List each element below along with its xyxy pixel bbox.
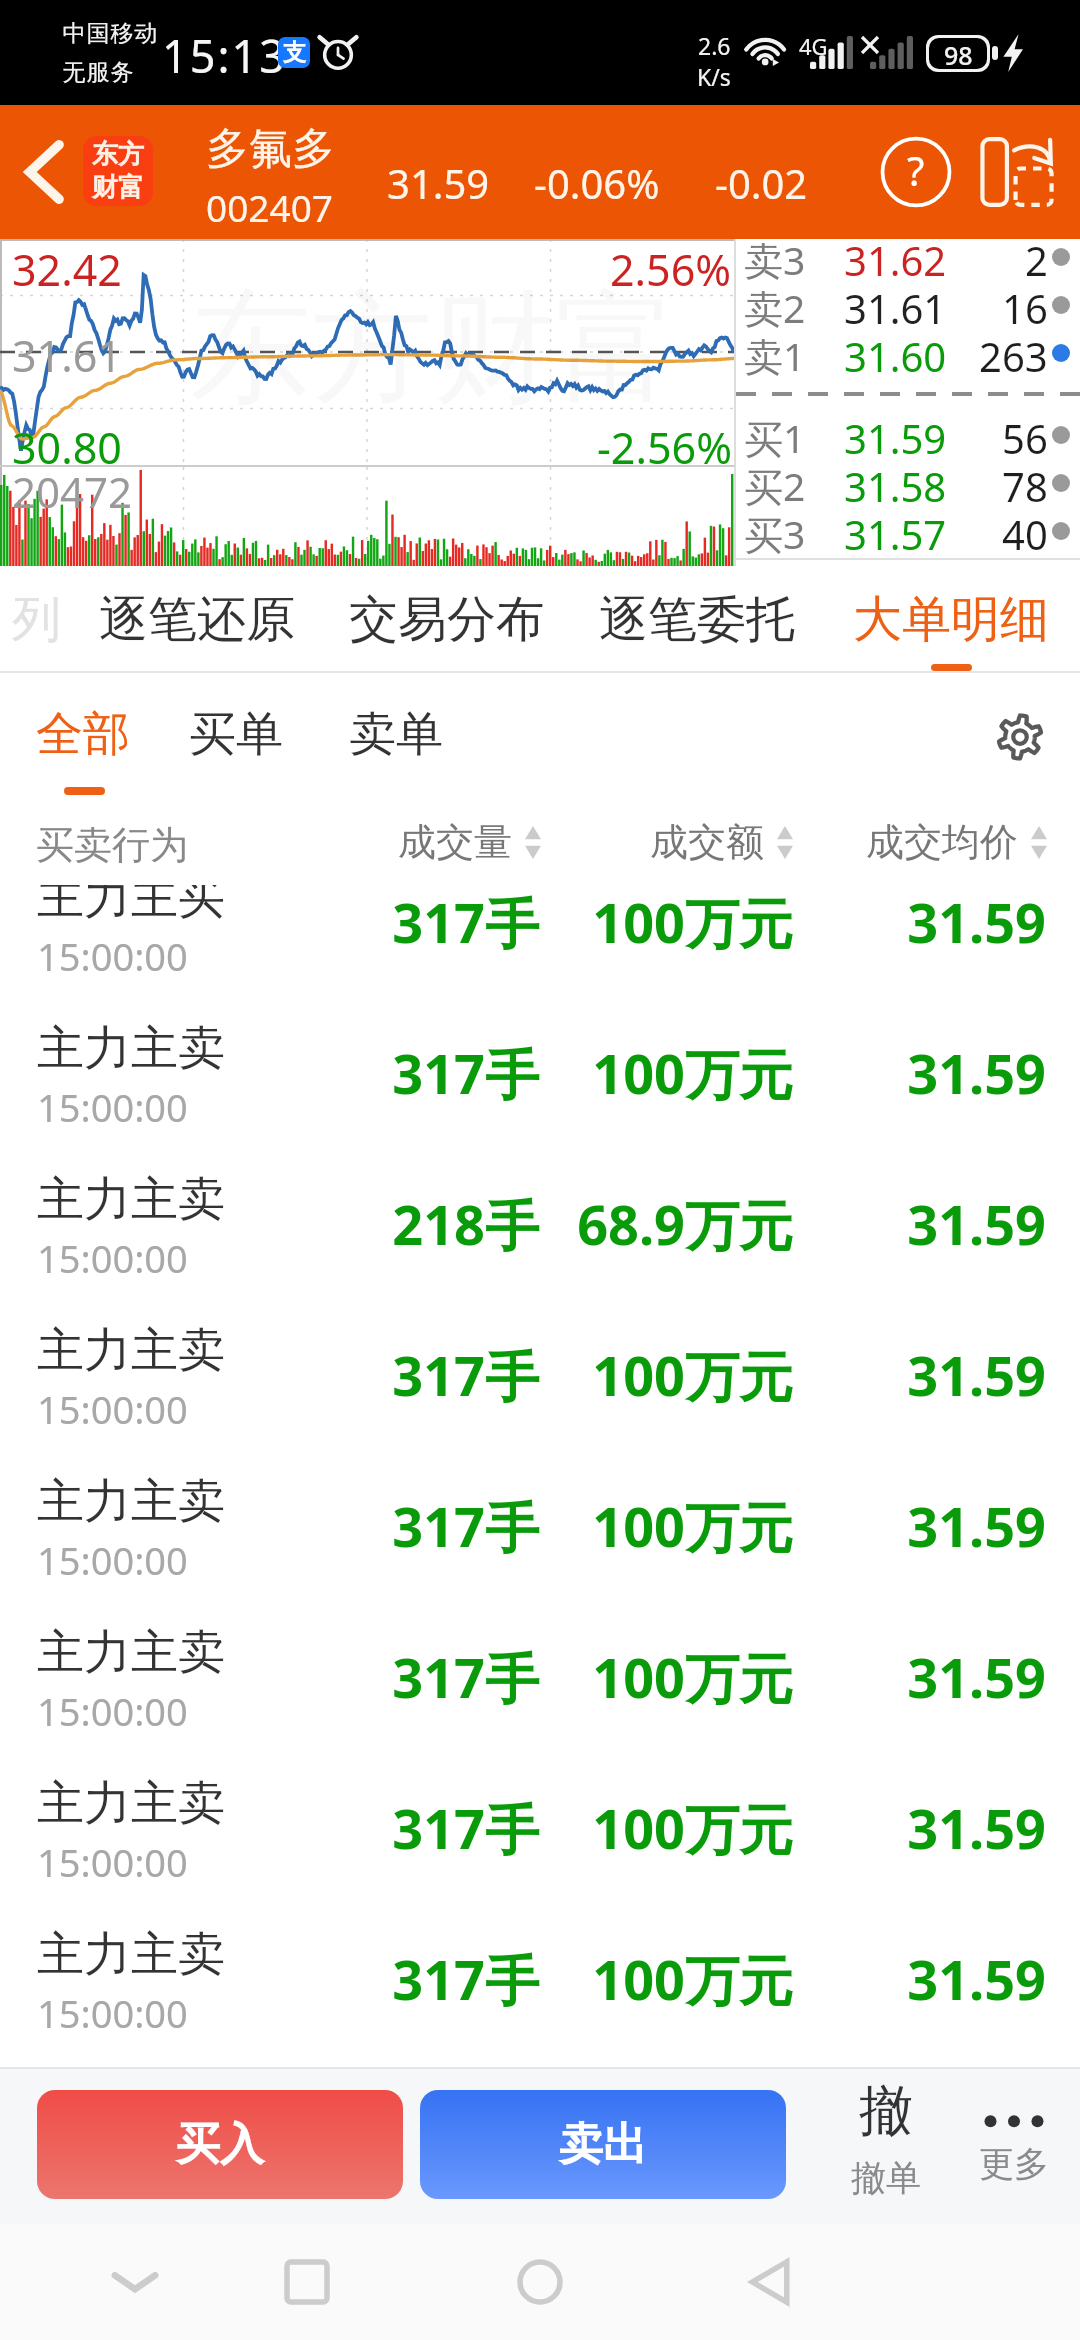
button[interactable]: 主力主卖: [0, 1901, 1080, 2052]
staticText: 15:00:00: [37, 1836, 188, 1888]
button[interactable]: 大单明细: [822, 566, 1080, 673]
button[interactable]: 买2: [736, 459, 1080, 507]
staticText: 撤单: [851, 2156, 921, 2200]
staticText: 主力主卖: [37, 1623, 225, 1682]
staticText: 15:00:00: [37, 1534, 188, 1586]
button[interactable]: 逐笔委托: [572, 566, 822, 673]
button[interactable]: 买入: [37, 2090, 403, 2199]
staticText: 317手: [339, 885, 539, 959]
staticText: 买3: [744, 507, 806, 555]
staticText: 317手: [339, 1489, 539, 1563]
staticText: 40: [1002, 507, 1048, 555]
button[interactable]: 卖3: [736, 233, 1080, 281]
button[interactable]: 主力主买: [0, 885, 1080, 995]
button[interactable]: Landscape mode: [964, 105, 1070, 239]
staticText: 16: [1002, 281, 1048, 329]
button[interactable]: Help: [868, 105, 964, 239]
staticText: 30.80: [12, 418, 122, 477]
button[interactable]: 卖出: [420, 2090, 786, 2199]
staticText: 31.58: [844, 459, 947, 507]
staticText: 31.59: [846, 885, 1046, 959]
staticText: 317手: [339, 1640, 539, 1714]
staticText: 31.61: [12, 326, 122, 385]
staticText: K/s: [697, 61, 731, 92]
button[interactable]: 卖单: [349, 705, 443, 764]
staticText: 100万元: [553, 1489, 793, 1563]
staticText: 成交量: [398, 818, 512, 866]
staticText: 主力主卖: [37, 1472, 225, 1531]
button[interactable]: Recent apps: [232, 2224, 382, 2340]
button[interactable]: 卖2: [736, 281, 1080, 329]
button[interactable]: Back: [0, 105, 88, 239]
staticText: 31.62: [844, 233, 947, 281]
staticText: 买卖行为: [36, 821, 188, 869]
staticText: 卖出: [559, 2117, 647, 2172]
staticText: 卖3: [744, 233, 806, 281]
staticText: 100万元: [553, 1036, 793, 1110]
button[interactable]: Hide: [60, 2224, 210, 2340]
staticText: 100万元: [553, 1640, 793, 1714]
button[interactable]: East Money: [83, 136, 153, 206]
staticText: 31.59: [846, 1640, 1046, 1714]
staticText: 成交额: [650, 818, 764, 866]
button[interactable]: 列: [0, 566, 72, 673]
button[interactable]: 交易分布: [322, 566, 572, 673]
staticText: 财富: [92, 171, 144, 204]
staticText: 交易分布: [349, 589, 545, 651]
staticText: 撤: [859, 2077, 913, 2145]
button[interactable]: Back: [695, 2224, 845, 2340]
staticText: 317手: [339, 1791, 539, 1865]
staticText: 98: [944, 38, 973, 69]
staticText: -0.02: [715, 156, 808, 210]
staticText: 100万元: [553, 1942, 793, 2016]
staticText: 主力主卖: [37, 1774, 225, 1833]
staticText: 78: [1002, 459, 1048, 507]
staticText: 卖1: [744, 329, 806, 377]
staticText: 15:00:00: [37, 1383, 188, 1435]
button[interactable]: 卖1: [736, 329, 1080, 377]
staticText: 317手: [339, 1338, 539, 1412]
button[interactable]: 买1: [736, 411, 1080, 459]
staticText: -2.56%: [597, 418, 732, 477]
button[interactable]: More: [958, 2077, 1070, 2217]
button[interactable]: 成交均价: [866, 816, 1047, 868]
staticText: 317手: [339, 1036, 539, 1110]
staticText: 逐笔还原: [99, 589, 295, 651]
staticText: 主力主卖: [37, 1170, 225, 1229]
staticText: -0.06%: [534, 156, 660, 210]
staticText: 主力主买: [37, 885, 225, 927]
button[interactable]: 成交量: [398, 816, 541, 868]
staticText: 31.59: [844, 411, 947, 459]
button[interactable]: Home: [465, 2224, 615, 2340]
staticText: 31.59: [846, 1489, 1046, 1563]
button[interactable]: 主力主卖: [0, 1146, 1080, 1297]
staticText: 15:00:00: [37, 1987, 188, 2039]
staticText: 主力主卖: [37, 1925, 225, 1984]
button[interactable]: 成交额: [650, 816, 793, 868]
button[interactable]: 买3: [736, 507, 1080, 555]
staticText: 31.59: [846, 1791, 1046, 1865]
button[interactable]: 主力主卖: [0, 1297, 1080, 1448]
button[interactable]: Settings: [978, 695, 1062, 779]
staticText: 卖2: [744, 281, 806, 329]
staticText: 31.59: [846, 1942, 1046, 2016]
button[interactable]: 主力主卖: [0, 1599, 1080, 1750]
button[interactable]: 撤: [830, 2077, 942, 2217]
staticText: 002407: [206, 182, 333, 232]
button[interactable]: 主力主卖: [0, 1750, 1080, 1901]
staticText: 20472: [12, 463, 133, 520]
staticText: 大单明细: [853, 589, 1049, 651]
staticText: ?: [907, 143, 925, 197]
staticText: 15:00:00: [37, 930, 188, 982]
button[interactable]: 主力主卖: [0, 1448, 1080, 1599]
button[interactable]: 全部: [36, 705, 130, 764]
button[interactable]: 逐笔还原: [72, 566, 322, 673]
staticText: 更多: [979, 2142, 1049, 2186]
staticText: 31.59: [846, 1036, 1046, 1110]
staticText: 218手: [339, 1187, 539, 1261]
button[interactable]: 买单: [189, 705, 283, 764]
staticText: 主力主卖: [37, 1321, 225, 1380]
staticText: 逐笔委托: [599, 589, 795, 651]
button[interactable]: 主力主卖: [0, 995, 1080, 1146]
staticText: 68.9万元: [553, 1187, 793, 1261]
